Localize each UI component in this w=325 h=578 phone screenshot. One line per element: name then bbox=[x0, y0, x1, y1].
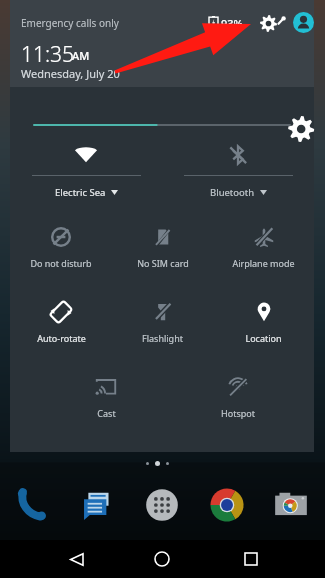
button[interactable]: Airplane mode bbox=[213, 220, 314, 282]
button[interactable]: Back bbox=[63, 546, 89, 572]
staticText: AM bbox=[72, 48, 90, 63]
button[interactable]: Bluetooth bbox=[162, 139, 314, 215]
staticText: Wednesday, July 20 bbox=[21, 66, 120, 81]
button[interactable]: Hotspot bbox=[200, 370, 276, 432]
button[interactable]: User profile bbox=[291, 10, 315, 34]
staticText: Cast bbox=[97, 407, 116, 419]
staticText: 11:35 bbox=[21, 40, 75, 69]
button[interactable]: Do not disturb bbox=[10, 220, 112, 282]
staticText: Airplane mode bbox=[232, 257, 295, 269]
staticText: Flashlight bbox=[142, 332, 183, 344]
staticText: Auto-rotate bbox=[37, 332, 86, 344]
staticText: Location bbox=[245, 332, 282, 344]
button[interactable]: Camera bbox=[270, 484, 312, 526]
staticText: Bluetooth bbox=[210, 186, 255, 199]
button[interactable]: Phone bbox=[12, 484, 54, 526]
button[interactable]: Apps bbox=[141, 484, 183, 526]
button[interactable]: Electric Sea bbox=[10, 139, 162, 215]
button[interactable]: Recent apps bbox=[238, 546, 264, 572]
staticText: Electric Sea bbox=[55, 186, 106, 199]
button[interactable]: Messages bbox=[76, 484, 118, 526]
button[interactable]: Brightness bbox=[10, 112, 314, 138]
button[interactable]: Chrome bbox=[206, 484, 248, 526]
button[interactable]: No SIM card bbox=[112, 220, 213, 282]
button[interactable]: Home bbox=[149, 546, 175, 572]
staticText: Emergency calls only bbox=[21, 16, 119, 30]
staticText: No SIM card bbox=[137, 257, 189, 269]
button[interactable]: Cast bbox=[68, 370, 144, 432]
button[interactable]: Auto-rotate bbox=[10, 295, 112, 357]
staticText: 93% bbox=[221, 16, 243, 31]
staticText: Do not disturb bbox=[30, 257, 92, 269]
button[interactable]: Flashlight bbox=[112, 295, 213, 357]
button[interactable]: Settings bbox=[255, 10, 281, 36]
staticText: Hotspot bbox=[221, 407, 255, 419]
button[interactable]: Location bbox=[213, 295, 314, 357]
